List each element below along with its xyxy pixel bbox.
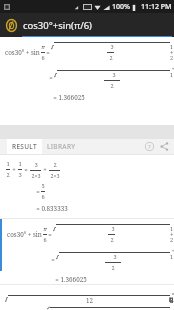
staticText: =: [48, 230, 52, 239]
staticText: = 1.366025: [55, 275, 87, 284]
staticText: 3: [111, 225, 115, 233]
button[interactable]: Share: [157, 139, 172, 154]
staticText: π: [41, 43, 45, 51]
staticText: 2: [6, 171, 10, 179]
staticText: 6: [43, 236, 47, 244]
button[interactable]: RESULT: [7, 139, 42, 154]
staticText: =: [49, 73, 53, 82]
staticText: cos30°+sin(π/6): [23, 19, 92, 32]
staticText: cos30° + sin: [5, 48, 40, 57]
button[interactable]: cos30° + sin: [0, 219, 174, 284]
button[interactable]: Help: [142, 139, 157, 154]
staticText: 3: [113, 253, 117, 261]
staticText: = 0.833333: [36, 204, 68, 213]
staticText: 2×3: [50, 172, 60, 179]
button[interactable]: cos30°+sin(π/6): [23, 19, 172, 32]
staticText: 6: [41, 54, 45, 62]
staticText: π: [43, 225, 47, 233]
staticText: 3: [110, 43, 114, 51]
staticText: +: [12, 165, 16, 174]
staticText: 2: [110, 82, 114, 90]
staticText: 12: [86, 296, 93, 304]
staticText: =: [36, 187, 40, 196]
staticText: 2: [53, 161, 57, 169]
staticText: 3: [112, 71, 116, 79]
staticText: =: [46, 48, 50, 57]
staticText: 11:12 PM: [141, 2, 172, 12]
staticText: LIBRARY: [47, 142, 76, 151]
button[interactable]: App logo: [3, 17, 19, 33]
staticText: 6: [41, 193, 45, 201]
staticText: 2: [109, 54, 113, 62]
staticText: 2: [110, 236, 114, 244]
staticText: 2×3: [31, 172, 41, 179]
staticText: +: [43, 165, 47, 174]
staticText: 1: [6, 160, 10, 168]
staticText: 2: [111, 264, 115, 272]
staticText: 1: [18, 160, 22, 168]
staticText: =: [51, 255, 55, 264]
staticText: 5: [41, 182, 45, 190]
staticText: ?: [148, 143, 151, 151]
staticText: 3: [18, 171, 22, 179]
staticText: cos30° + sin: [7, 230, 42, 239]
button[interactable]: LIBRARY: [42, 139, 81, 154]
staticText: =: [24, 165, 28, 174]
staticText: 100%: [112, 2, 130, 12]
staticText: 3: [34, 161, 38, 169]
staticText: = 1.366025: [53, 93, 85, 102]
staticText: RESULT: [12, 142, 37, 151]
